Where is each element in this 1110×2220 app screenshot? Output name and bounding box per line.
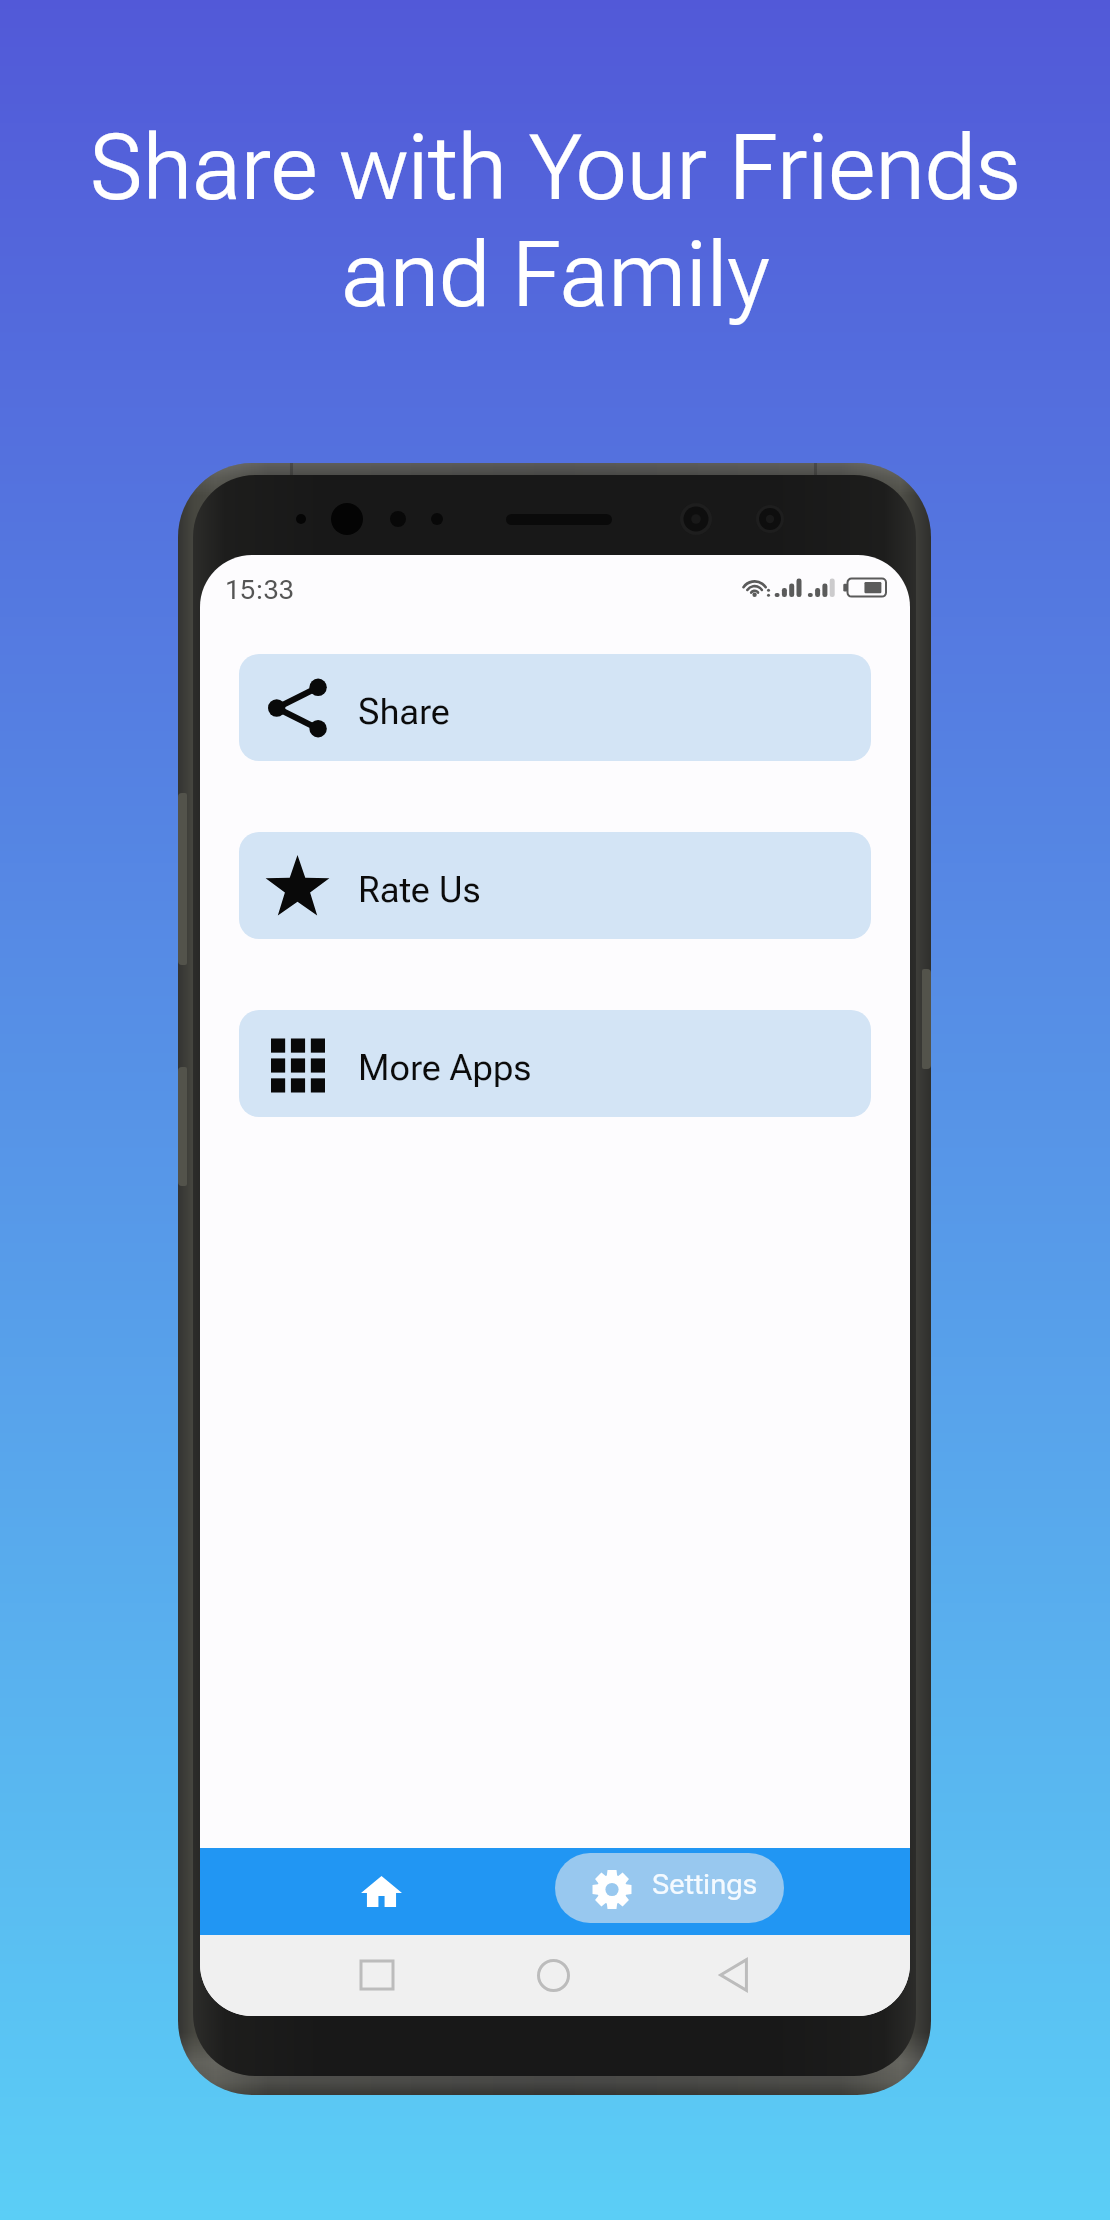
button[interactable]: Home — [341, 1858, 422, 1924]
button[interactable]: Share — [239, 654, 871, 761]
button[interactable]: Rate Us — [239, 832, 871, 939]
button[interactable]: Settings — [555, 1853, 784, 1923]
staticText: Settings — [652, 1867, 758, 1901]
staticText: Share — [358, 691, 450, 733]
staticText: Share with Your Friends and Family — [0, 116, 1110, 328]
staticText: Rate Us — [358, 869, 481, 911]
button[interactable]: More Apps — [239, 1010, 871, 1117]
staticText: More Apps — [358, 1047, 532, 1089]
staticText: 15:33 — [225, 574, 294, 606]
button[interactable]: Home — [513, 1937, 593, 2013]
button[interactable]: Recent apps — [337, 1937, 417, 2013]
button[interactable]: Back — [693, 1937, 773, 2013]
